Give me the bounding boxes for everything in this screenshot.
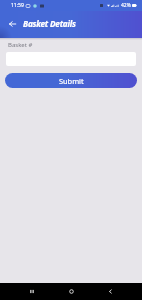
button[interactable]: Submit bbox=[5, 73, 137, 88]
staticText: Submit bbox=[59, 76, 84, 86]
button[interactable]: Back bbox=[102, 283, 119, 300]
button[interactable]: Home bbox=[63, 283, 80, 300]
staticText: Basket Details bbox=[23, 18, 76, 29]
staticText: Basket # bbox=[8, 41, 33, 49]
staticText: 11:59 bbox=[11, 2, 24, 9]
button[interactable]: Back bbox=[3, 15, 21, 33]
staticText: 42% bbox=[121, 2, 131, 9]
button[interactable]: Recent apps bbox=[23, 283, 40, 300]
